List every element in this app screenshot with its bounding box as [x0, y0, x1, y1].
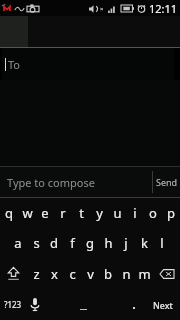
button[interactable]: u [108, 198, 126, 228]
staticText: p [167, 204, 175, 222]
button[interactable]: l [153, 228, 171, 258]
staticText: t [79, 204, 84, 222]
button[interactable]: Backspace [153, 258, 180, 289]
staticText: n [122, 265, 131, 283]
staticText: z [33, 265, 40, 283]
button[interactable]: Shift [0, 258, 27, 289]
staticText: j [124, 234, 128, 252]
button[interactable]: y [90, 198, 108, 228]
button[interactable]: j [117, 228, 135, 258]
staticText: c [69, 265, 76, 283]
staticText: m [138, 265, 151, 283]
button[interactable]: o [144, 198, 162, 228]
staticText: q [5, 204, 13, 222]
staticText: 12:11 [149, 1, 178, 16]
staticText: × [100, 5, 104, 13]
staticText: v [87, 265, 94, 283]
staticText: g [86, 234, 94, 252]
button[interactable]: ?123 [0, 289, 25, 320]
button[interactable]: a [9, 228, 27, 258]
button[interactable]: k [135, 228, 153, 258]
button[interactable]: Type to compose [0, 167, 152, 197]
button[interactable]: Send [153, 167, 180, 197]
staticText: e [41, 204, 49, 222]
button[interactable]: h [99, 228, 117, 258]
staticText: a [14, 234, 22, 252]
staticText: r [60, 204, 66, 222]
button[interactable]: w [18, 198, 36, 228]
button[interactable]: x [45, 258, 63, 289]
staticText: b [104, 265, 112, 283]
staticText: i [133, 204, 137, 222]
button[interactable]: q [0, 198, 18, 228]
staticText: d [50, 234, 58, 252]
button[interactable]: s [27, 228, 45, 258]
staticText: To [8, 57, 21, 72]
button[interactable]: z [27, 258, 45, 289]
staticText: k [141, 234, 148, 252]
button[interactable]: Space [45, 289, 122, 320]
staticText: l [160, 234, 164, 252]
button[interactable]: i [126, 198, 144, 228]
staticText: y [96, 204, 103, 222]
staticText: h [104, 234, 113, 252]
button[interactable]: g [81, 228, 99, 258]
staticText: x [51, 265, 58, 283]
button[interactable]: f [63, 228, 81, 258]
staticText: Type to compose [7, 175, 95, 190]
staticText: Send [156, 176, 178, 188]
staticText: s [33, 234, 40, 252]
button[interactable]: d [45, 228, 63, 258]
button[interactable]: c [63, 258, 81, 289]
staticText: u [113, 204, 122, 222]
button[interactable]: t [72, 198, 90, 228]
button[interactable]: e [36, 198, 54, 228]
button[interactable]: Next [146, 289, 180, 320]
staticText: ?123 [4, 299, 22, 310]
staticText: f [70, 234, 75, 252]
button[interactable]: To [2, 48, 174, 80]
button[interactable]: Voice input [25, 289, 45, 320]
button[interactable]: r [54, 198, 72, 228]
button[interactable]: b [99, 258, 117, 289]
button[interactable] [122, 289, 146, 320]
staticText: w [22, 204, 33, 222]
button[interactable]: p [162, 198, 180, 228]
button[interactable]: v [81, 258, 99, 289]
staticText: Next [153, 299, 173, 311]
button[interactable]: m [135, 258, 153, 289]
button[interactable]: n [117, 258, 135, 289]
staticText: o [149, 204, 157, 222]
